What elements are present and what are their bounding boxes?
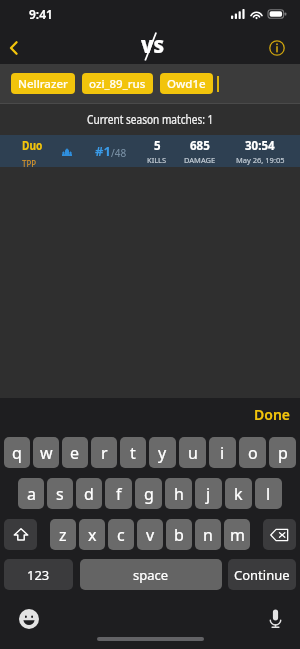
button[interactable]: r [91,437,117,468]
button[interactable]: h [165,478,192,509]
staticText: y [158,442,167,464]
button[interactable]: w [33,437,59,468]
staticText: /48 [111,146,127,160]
staticText: o [248,442,258,464]
staticText: Done [254,405,291,424]
button[interactable]: g [135,478,162,509]
button[interactable]: s [47,478,73,509]
staticText: q [12,442,22,464]
staticText: w [40,442,53,464]
staticText: g [144,483,154,505]
staticText: 9:41 [29,6,53,22]
button[interactable]: Owd1e [160,73,213,94]
button[interactable]: e [62,437,88,468]
button[interactable]: t [120,437,146,468]
staticText: e [70,442,80,464]
staticText: s [56,483,64,505]
button[interactable]: Back [0,30,32,66]
staticText: space [133,566,169,584]
button[interactable]: 123 [4,559,73,590]
button[interactable]: Emoji [15,605,43,633]
staticText: May 26, 19:05 [236,155,285,165]
button[interactable]: Nellrazer [11,73,75,94]
button[interactable]: b [166,519,192,550]
staticText: 5 [154,138,161,154]
button[interactable]: l [255,478,282,509]
staticText: VS [141,34,164,59]
staticText: p [278,442,288,464]
staticText: l [266,483,271,505]
button[interactable]: Dictation [261,604,289,632]
button[interactable]: space [80,559,222,590]
staticText: v [146,524,155,546]
staticText: t [130,442,136,464]
button[interactable]: Backspace [263,519,296,550]
button[interactable]: ozi_89_rus [82,73,153,94]
button[interactable]: y [149,437,176,468]
staticText: 30:54 [245,138,275,154]
staticText: TPP [22,157,37,169]
button[interactable]: x [79,519,105,550]
button[interactable]: u [179,437,206,468]
button[interactable]: k [225,478,252,509]
button[interactable]: p [269,437,296,468]
staticText: Current season matches: 1 [87,111,214,127]
staticText: d [84,483,94,505]
button[interactable]: z [50,519,76,550]
staticText: KILLS [147,155,167,165]
staticText: h [174,483,184,505]
staticText: k [234,483,243,505]
button[interactable]: Shift [4,519,37,550]
button[interactable]: Duo [0,135,300,167]
staticText: x [88,524,97,546]
button[interactable]: q [4,437,30,468]
staticText: r [101,442,108,464]
staticText: f [116,483,122,505]
staticText: c [117,524,125,546]
staticText: DAMAGE [184,155,216,165]
button[interactable]: f [105,478,132,509]
staticText: i [220,442,225,464]
button[interactable]: j [195,478,222,509]
button[interactable]: i [209,437,236,468]
staticText: m [230,524,245,546]
button[interactable]: n [195,519,221,550]
button[interactable]: Continue [228,559,296,590]
button[interactable]: m [224,519,250,550]
button[interactable]: v [137,519,163,550]
staticText: Nellrazer [18,76,68,92]
staticText: ozi_89_rus [89,76,146,92]
button[interactable]: c [108,519,134,550]
staticText: z [59,524,67,546]
button[interactable]: Done [250,403,295,426]
button[interactable]: o [239,437,266,468]
button[interactable]: a [18,478,44,509]
staticText: 123 [27,566,50,584]
staticText: a [27,483,36,505]
staticText: j [206,483,211,505]
staticText: Owd1e [167,76,206,92]
staticText: Continue [234,566,290,584]
button[interactable]: Info [259,30,295,66]
staticText: Duo [22,138,43,154]
staticText: #1 [95,142,111,160]
staticText: u [188,442,198,464]
staticText: n [203,524,213,546]
button[interactable]: d [76,478,102,509]
staticText: b [174,524,184,546]
staticText: 685 [190,138,210,154]
